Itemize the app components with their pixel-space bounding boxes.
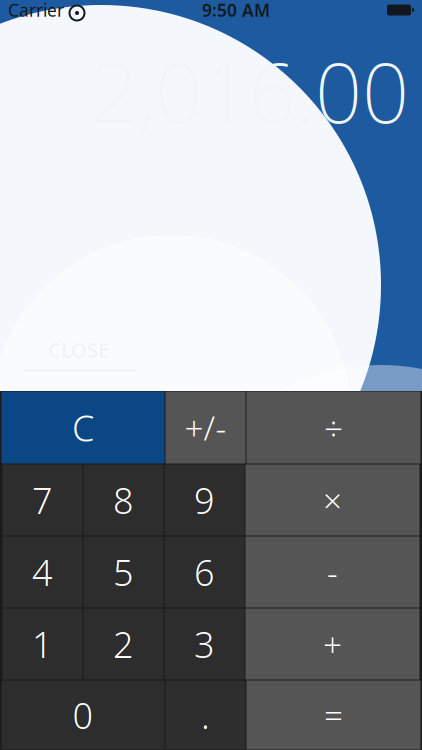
button[interactable]: 9 xyxy=(164,464,245,536)
button[interactable]: - xyxy=(245,536,420,608)
button[interactable]: 5 xyxy=(83,536,164,608)
button[interactable]: 0 xyxy=(1,680,165,750)
staticText: CLOSE xyxy=(48,336,109,363)
staticText: 7 xyxy=(32,476,53,524)
staticText: 8 xyxy=(113,476,134,524)
staticText: 9:50 AM xyxy=(202,0,270,21)
staticText: 3 xyxy=(194,620,215,668)
button[interactable]: + xyxy=(245,608,420,680)
button[interactable]: 4 xyxy=(2,536,83,608)
staticText: - xyxy=(327,550,338,594)
button[interactable]: 3 xyxy=(164,608,245,680)
button[interactable]: = xyxy=(246,680,421,750)
staticText: 2 xyxy=(113,620,134,668)
button[interactable]: 8 xyxy=(83,464,164,536)
staticText: × xyxy=(323,478,342,522)
button[interactable]: 2 xyxy=(83,608,164,680)
staticText: + xyxy=(323,622,342,666)
staticText: = xyxy=(324,693,343,737)
button[interactable]: . xyxy=(165,680,246,750)
staticText: 5 xyxy=(113,548,134,596)
button[interactable]: ÷ xyxy=(246,391,421,464)
button[interactable]: C xyxy=(1,391,165,464)
button[interactable]: 7 xyxy=(2,464,83,536)
button[interactable]: CLOSE xyxy=(0,330,136,377)
staticText: 9 xyxy=(194,476,215,524)
staticText: . xyxy=(201,691,210,739)
staticText: +/- xyxy=(184,405,226,450)
staticText: 4 xyxy=(32,548,53,596)
staticText: Carrier xyxy=(8,0,64,21)
staticText: C xyxy=(72,404,94,451)
button[interactable]: +/- xyxy=(165,391,246,464)
button[interactable]: 6 xyxy=(164,536,245,608)
button[interactable]: × xyxy=(245,464,420,536)
button[interactable]: 1 xyxy=(2,608,83,680)
staticText: 6 xyxy=(194,548,215,596)
staticText: ÷ xyxy=(324,405,343,450)
staticText: 2,016.00 xyxy=(91,36,409,146)
staticText: 0 xyxy=(72,691,93,739)
staticText: 1 xyxy=(32,620,53,668)
staticText xyxy=(64,0,69,21)
